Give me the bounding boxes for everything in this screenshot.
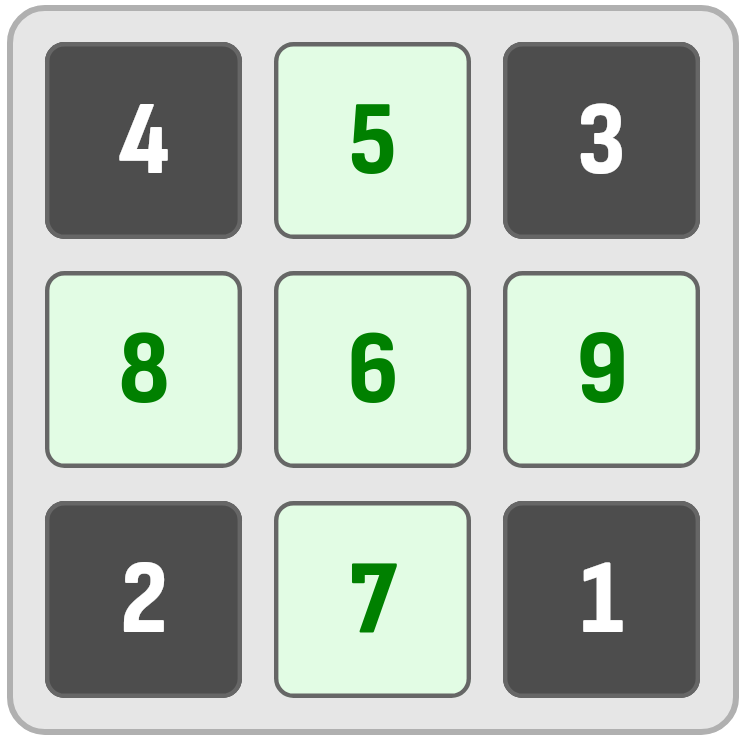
button[interactable]: 2 bbox=[45, 501, 242, 698]
staticText: 2 bbox=[120, 537, 168, 663]
button[interactable]: 4 bbox=[45, 42, 242, 239]
button[interactable]: 8 bbox=[45, 271, 242, 468]
button[interactable]: 3 bbox=[503, 42, 700, 239]
staticText: 3 bbox=[577, 78, 626, 204]
staticText: 4 bbox=[118, 78, 170, 204]
staticText: 6 bbox=[347, 307, 399, 433]
button[interactable]: 6 bbox=[274, 271, 471, 468]
staticText: 5 bbox=[349, 78, 397, 204]
button[interactable]: 7 bbox=[274, 501, 471, 698]
button[interactable]: 9 bbox=[503, 271, 700, 468]
staticText: 1 bbox=[580, 537, 624, 663]
button[interactable]: 1 bbox=[503, 501, 700, 698]
staticText: 9 bbox=[576, 307, 628, 433]
button[interactable]: 5 bbox=[274, 42, 471, 239]
staticText: 8 bbox=[118, 307, 170, 433]
staticText: 7 bbox=[349, 537, 397, 663]
